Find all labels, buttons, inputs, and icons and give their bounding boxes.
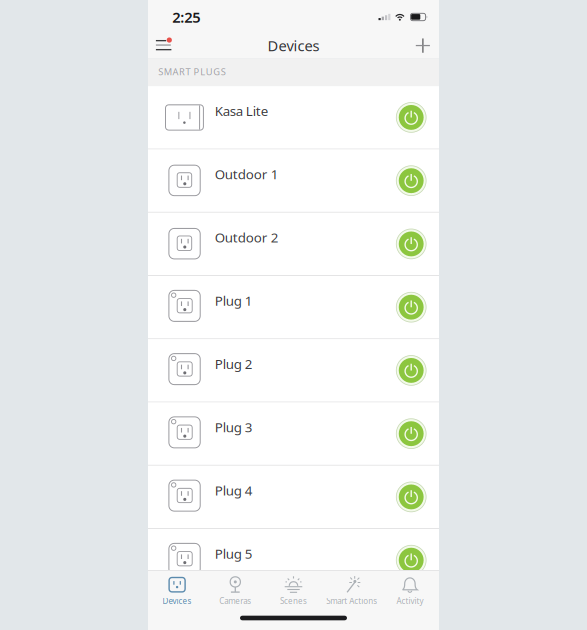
button[interactable]: Plug 2 [148,339,439,402]
staticText: SMART PLUGS [158,65,226,78]
button[interactable]: Scenes [264,570,323,608]
button[interactable]: Toggle power [396,165,426,196]
staticText: Outdoor 2 [215,228,279,246]
staticText: Scenes [280,596,307,606]
button[interactable]: Plug 1 [148,276,439,339]
button[interactable]: Activity [381,570,439,608]
button[interactable]: Kasa Lite [148,86,439,149]
staticText: Smart Actions [326,596,377,606]
button[interactable]: Cameras [206,570,264,608]
button[interactable]: Plug 5 [148,529,439,592]
button[interactable]: Toggle power [396,102,426,133]
staticText: Plug 3 [215,418,253,436]
staticText: Plug 5 [215,545,253,562]
button[interactable]: Outdoor 1 [148,150,439,213]
button[interactable]: Filter [148,28,183,58]
button[interactable]: Smart Actions [323,570,381,608]
button[interactable]: Devices [148,570,206,608]
staticText: Kasa Lite [215,102,269,120]
button[interactable]: Plug 4 [148,466,439,529]
button[interactable]: Plug 3 [148,403,439,466]
staticText: Plug 2 [215,355,253,373]
staticText: Cameras [219,596,251,606]
button[interactable]: Add device [406,28,439,58]
staticText: Devices [163,596,192,606]
button[interactable]: Toggle power [396,418,426,449]
staticText: Activity [396,596,423,606]
staticText: Outdoor 1 [215,165,279,183]
button[interactable]: Toggle power [396,292,426,322]
staticText: Devices [267,36,319,55]
button[interactable]: Outdoor 2 [148,213,439,276]
staticText: Plug 1 [215,292,253,309]
button[interactable]: Toggle power [396,545,426,575]
button[interactable]: Toggle power [396,355,426,386]
button[interactable]: Toggle power [396,229,426,259]
staticText: Plug 4 [215,481,253,499]
button[interactable]: Toggle power [396,482,426,512]
staticText: 2:25 [172,7,200,27]
